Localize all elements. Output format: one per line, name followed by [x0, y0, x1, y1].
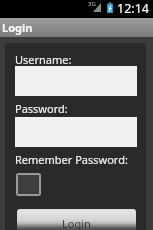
staticText: Username: [15, 52, 72, 67]
staticText: 12:14 [117, 0, 149, 17]
staticText: Login [2, 20, 33, 35]
staticText: Remember Password: [15, 152, 128, 167]
staticText: Password: [15, 101, 68, 116]
staticText: 3G [88, 0, 96, 8]
staticText: Login [62, 216, 91, 230]
button[interactable]: Remember password [16, 173, 41, 196]
button[interactable]: Login [17, 209, 136, 230]
